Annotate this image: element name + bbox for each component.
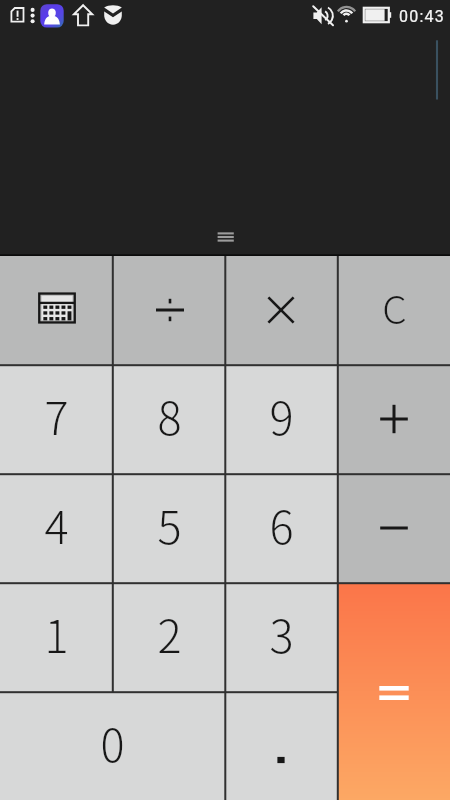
staticText: C <box>382 279 407 335</box>
staticText: 7 <box>44 383 69 448</box>
button[interactable]: 4 <box>0 474 113 583</box>
button[interactable]: 6 <box>225 474 337 583</box>
staticText: 00:43 <box>399 7 445 26</box>
staticText: 5 <box>157 492 182 557</box>
button[interactable]: 0 <box>0 692 225 800</box>
button[interactable]: Multiply <box>225 256 337 365</box>
staticText: 3 <box>269 601 294 666</box>
button[interactable]: Minus <box>338 474 450 583</box>
button[interactable]: 1 <box>0 583 113 692</box>
staticText: 0 <box>100 710 125 775</box>
button[interactable]: 7 <box>0 365 113 474</box>
staticText: 6 <box>269 492 294 557</box>
button[interactable]: Expression display <box>0 31 450 256</box>
button[interactable]: 5 <box>113 474 226 583</box>
button[interactable]: Decimal point <box>225 692 337 800</box>
staticText: 1 <box>44 601 69 666</box>
button[interactable]: 8 <box>113 365 226 474</box>
button[interactable]: 2 <box>113 583 226 692</box>
button[interactable]: Divide <box>113 256 226 365</box>
button[interactable]: C <box>338 256 450 365</box>
staticText: 2 <box>157 601 182 666</box>
button[interactable]: Plus <box>338 365 450 474</box>
staticText: 4 <box>44 492 69 557</box>
button[interactable]: 3 <box>225 583 337 692</box>
button[interactable]: Equals <box>338 583 450 800</box>
staticText: 8 <box>157 383 182 448</box>
button[interactable]: 9 <box>225 365 337 474</box>
staticText: 9 <box>269 383 294 448</box>
button[interactable]: Calculator mode <box>0 256 113 365</box>
